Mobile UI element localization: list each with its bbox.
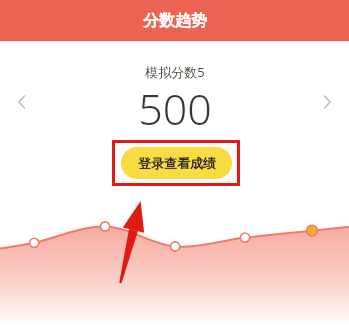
staticText: 登录查看成绩	[138, 155, 216, 171]
button[interactable]: Previous score	[8, 88, 36, 116]
staticText: 分数趋势	[143, 11, 207, 31]
button[interactable]: 登录查看成绩	[121, 147, 232, 179]
staticText: 模拟分数5	[145, 63, 205, 81]
button[interactable]: Next score	[313, 88, 341, 116]
staticText: 500	[138, 79, 212, 138]
